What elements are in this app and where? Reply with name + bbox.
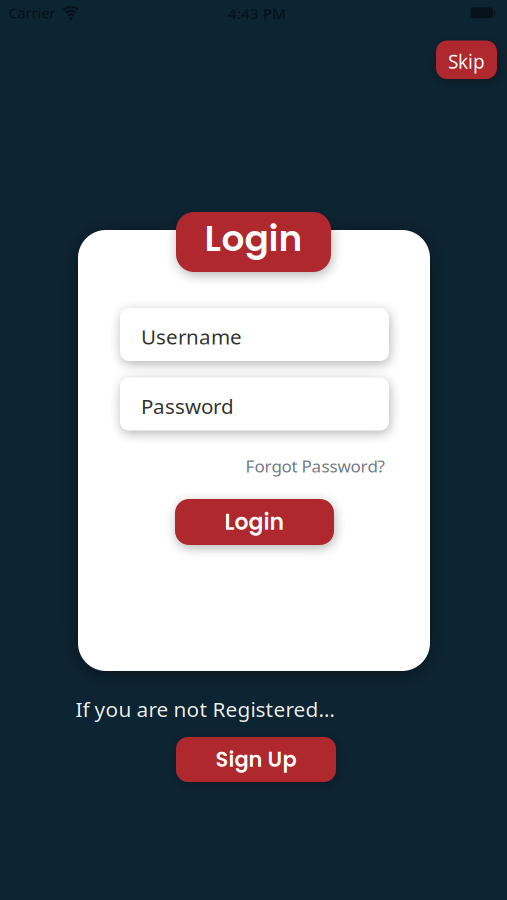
staticText: Username [141, 322, 242, 350]
textField[interactable]: Password [141, 392, 389, 420]
button[interactable]: Skip [436, 40, 497, 79]
staticText: Carrier [8, 3, 55, 23]
staticText: Login [204, 213, 302, 264]
staticText: Password [141, 392, 234, 420]
button[interactable]: Login [175, 499, 334, 545]
staticText: 4:43 PM [228, 3, 286, 24]
staticText: Skip [448, 48, 485, 74]
staticText: If you are not Registered… [75, 695, 334, 723]
button[interactable]: Forgot Password? [245, 454, 384, 478]
textField[interactable]: Username [141, 322, 389, 350]
staticText: Login [224, 507, 284, 537]
staticText: Forgot Password? [245, 454, 384, 478]
button[interactable]: Sign Up [176, 737, 336, 782]
staticText: Sign Up [215, 745, 296, 774]
